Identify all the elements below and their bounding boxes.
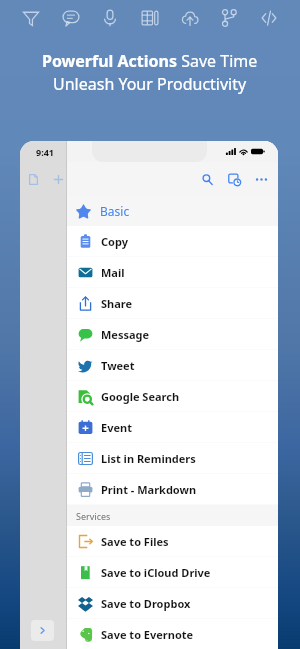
button[interactable]: Services <box>67 505 278 526</box>
button[interactable]: Share <box>67 288 278 319</box>
staticText: List in Reminders <box>101 451 196 466</box>
button[interactable]: Notes <box>137 5 163 31</box>
staticText: Mail <box>101 265 125 280</box>
staticText: 9:41 <box>36 146 54 158</box>
button[interactable]: Branch <box>216 5 242 31</box>
button[interactable]: Copy <box>67 226 278 257</box>
button[interactable]: Code <box>256 5 282 31</box>
button[interactable]: List in Reminders <box>67 443 278 474</box>
staticText: Save to Files <box>101 534 169 549</box>
staticText: Event <box>101 420 132 435</box>
button[interactable]: Recent <box>224 169 244 189</box>
button[interactable]: Search <box>197 169 217 189</box>
button[interactable]: Filter <box>18 5 44 31</box>
button[interactable]: Message <box>67 319 278 350</box>
staticText: Basic <box>100 203 130 219</box>
button[interactable]: New document <box>24 170 43 189</box>
button[interactable]: Save to iCloud Drive <box>67 557 278 588</box>
button[interactable]: Mail <box>67 257 278 288</box>
button[interactable]: Google Search <box>67 381 278 412</box>
staticText: Print - Markdown <box>101 482 197 497</box>
staticText: Message <box>101 327 150 342</box>
button[interactable]: Expand <box>31 620 54 641</box>
button[interactable]: Voice <box>97 5 123 31</box>
button[interactable]: Add <box>51 170 66 189</box>
button[interactable]: Chat <box>58 5 84 31</box>
staticText: Google Search <box>101 389 180 404</box>
staticText: Share <box>101 296 133 311</box>
staticText: Tweet <box>101 358 135 373</box>
button[interactable]: Tweet <box>67 350 278 381</box>
button[interactable]: Save to Evernote <box>67 619 278 649</box>
button[interactable]: More <box>251 169 271 189</box>
button[interactable]: Save to Dropbox <box>67 588 278 619</box>
button[interactable]: Upload <box>177 5 203 31</box>
staticText: Save to Dropbox <box>101 596 191 611</box>
staticText: Save to Evernote <box>101 627 194 642</box>
button[interactable]: Save to Files <box>67 526 278 557</box>
button[interactable]: Print - Markdown <box>67 474 278 505</box>
button[interactable]: Event <box>67 412 278 443</box>
staticText: Powerful Actions Save Time <box>42 50 258 72</box>
staticText: Services <box>76 510 111 522</box>
staticText: Unleash Your Productivity <box>53 73 247 95</box>
button[interactable]: Basic <box>67 196 278 226</box>
staticText: Save to iCloud Drive <box>101 565 211 580</box>
staticText: Copy <box>101 234 128 249</box>
